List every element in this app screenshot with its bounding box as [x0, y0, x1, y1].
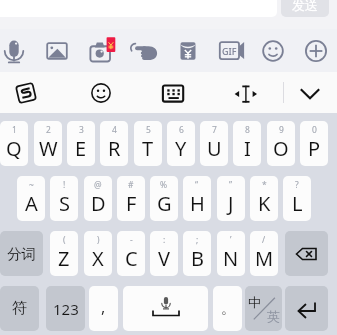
- button[interactable]: -: [117, 231, 145, 276]
- staticText: R: [108, 135, 121, 162]
- button[interactable]: Emoji: [256, 29, 290, 72]
- staticText: F: [126, 190, 137, 217]
- staticText: E: [75, 135, 87, 162]
- button[interactable]: 。: [213, 286, 242, 331]
- staticText: D: [91, 190, 106, 217]
- staticText: /: [262, 234, 266, 246]
- button[interactable]: GIF: [214, 29, 248, 72]
- button[interactable]: 发送: [281, 0, 329, 17]
- button[interactable]: 8: [233, 121, 261, 166]
- button[interactable]: ?: [283, 176, 311, 221]
- button[interactable]: Sogou input settings: [8, 72, 44, 113]
- staticText: 3: [79, 124, 84, 136]
- staticText: 英: [267, 308, 280, 324]
- button[interactable]: Gallery: [40, 29, 74, 72]
- button[interactable]: Keyboard layout: [155, 72, 191, 113]
- button[interactable]: 9: [267, 121, 295, 166]
- button[interactable]: Move cursor: [228, 72, 264, 113]
- staticText: 5: [146, 124, 151, 136]
- staticText: :: [163, 234, 166, 246]
- staticText: X: [92, 245, 104, 272]
- button[interactable]: !: [50, 176, 78, 221]
- button[interactable]: 6: [167, 121, 195, 166]
- button[interactable]: Red packet: [171, 29, 205, 72]
- staticText: N: [223, 245, 239, 272]
- button[interactable]: Voice input: [0, 29, 31, 72]
- staticText: I: [244, 135, 251, 162]
- staticText: M: [255, 245, 274, 272]
- button[interactable]: (: [50, 231, 78, 276]
- staticText: 中: [248, 294, 261, 310]
- button[interactable]: 符: [0, 286, 39, 331]
- button[interactable]: 分词: [0, 231, 43, 276]
- staticText: U: [207, 135, 222, 162]
- staticText: Y: [175, 135, 187, 162]
- staticText: #: [128, 179, 134, 191]
- button[interactable]: Backspace: [285, 231, 328, 276]
- button[interactable]: Handwriting: [128, 29, 162, 72]
- staticText: 9: [279, 124, 284, 136]
- staticText: L: [292, 190, 303, 217]
- button[interactable]: Camera: [84, 29, 118, 72]
- button[interactable]: 5: [134, 121, 162, 166]
- button[interactable]: Switch Chinese English: [245, 286, 282, 331]
- button[interactable]: %: [150, 176, 178, 221]
- staticText: 123: [53, 299, 79, 319]
- button[interactable]: Emoji: [83, 72, 119, 113]
- staticText: @: [94, 179, 102, 191]
- staticText: W: [39, 135, 58, 162]
- staticText: B: [191, 245, 204, 272]
- button[interactable]: *: [250, 176, 278, 221]
- staticText: 分词: [7, 245, 36, 263]
- staticText: 7: [212, 124, 217, 136]
- staticText: !: [63, 179, 66, 191]
- button[interactable]: “: [183, 176, 211, 221]
- staticText: P: [308, 135, 321, 162]
- button[interactable]: 0: [300, 121, 328, 166]
- staticText: T: [142, 135, 154, 162]
- staticText: A: [25, 190, 38, 217]
- staticText: V: [158, 245, 170, 272]
- staticText: 发送: [292, 0, 318, 13]
- button[interactable]: 4: [100, 121, 128, 166]
- staticText: ,: [101, 296, 106, 318]
- staticText: ’: [230, 234, 232, 246]
- staticText: S: [59, 190, 70, 217]
- staticText: C: [125, 245, 138, 272]
- staticText: Q: [6, 135, 22, 162]
- button[interactable]: Enter: [285, 286, 328, 331]
- staticText: (: [63, 234, 66, 246]
- staticText: ): [97, 234, 100, 246]
- staticText: 符: [12, 299, 27, 318]
- staticText: 2: [46, 124, 51, 136]
- button[interactable]: 7: [200, 121, 228, 166]
- button[interactable]: #: [117, 176, 145, 221]
- button[interactable]: Space: [123, 286, 208, 331]
- button[interactable]: 123: [46, 286, 85, 331]
- staticText: 4: [112, 124, 117, 136]
- staticText: G: [157, 190, 172, 217]
- button[interactable]: ~: [17, 176, 45, 221]
- button[interactable]: /: [250, 231, 278, 276]
- staticText: 。: [221, 300, 235, 318]
- button[interactable]: @: [84, 176, 112, 221]
- button[interactable]: ,: [89, 286, 118, 331]
- button[interactable]: ’: [217, 231, 245, 276]
- button[interactable]: 3: [67, 121, 95, 166]
- button[interactable]: ): [84, 231, 112, 276]
- button[interactable]: More: [299, 29, 333, 72]
- button[interactable]: ”: [217, 176, 245, 221]
- staticText: J: [228, 190, 234, 217]
- button[interactable]: :: [150, 231, 178, 276]
- button[interactable]: 1: [0, 121, 28, 166]
- button[interactable]: 2: [34, 121, 62, 166]
- button[interactable]: ;: [183, 231, 211, 276]
- staticText: ~: [29, 179, 34, 191]
- staticText: ;: [196, 234, 199, 246]
- staticText: Z: [58, 245, 70, 272]
- button[interactable]: Hide keyboard: [292, 72, 328, 113]
- staticText: *: [262, 179, 267, 191]
- staticText: 8: [245, 124, 250, 136]
- staticText: 1: [12, 124, 17, 136]
